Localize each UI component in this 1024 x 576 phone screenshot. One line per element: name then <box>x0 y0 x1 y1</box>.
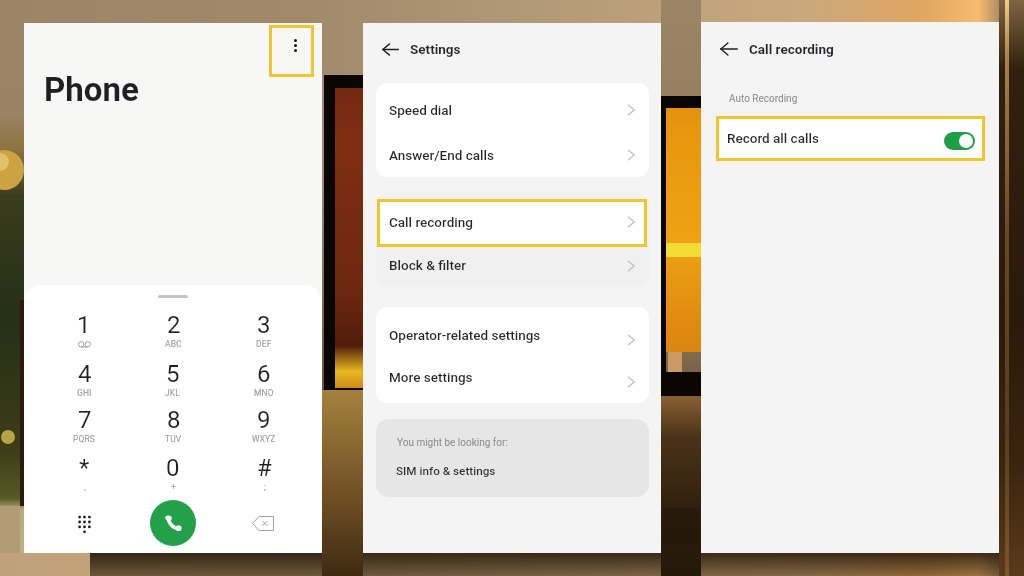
staticText: 1 <box>77 311 91 339</box>
staticText: Phone <box>44 70 139 109</box>
button[interactable] <box>376 307 650 355</box>
staticText: 6 <box>257 360 271 388</box>
staticText: TUV <box>165 434 182 444</box>
staticText: 2 <box>167 311 181 339</box>
staticText: 4 <box>78 360 92 388</box>
button[interactable]: More options <box>269 25 314 77</box>
button[interactable] <box>376 419 649 497</box>
staticText: Call recording <box>389 214 473 230</box>
staticText: , <box>84 482 86 492</box>
button[interactable] <box>716 116 985 161</box>
staticText: Speed dial <box>389 102 453 118</box>
button[interactable]: Show keypad <box>68 509 100 537</box>
staticText: 3 <box>257 311 271 339</box>
button[interactable]: Backspace <box>246 511 280 535</box>
button[interactable]: 4 <box>51 360 117 406</box>
staticText: Block & filter <box>389 257 466 273</box>
button[interactable] <box>376 355 650 403</box>
staticText: Auto Recording <box>729 93 798 105</box>
staticText: 8 <box>167 406 181 434</box>
staticText: 9 <box>257 406 271 434</box>
button[interactable]: Back <box>375 34 405 64</box>
button[interactable]: Call <box>150 500 196 546</box>
button[interactable] <box>376 83 650 130</box>
button[interactable] <box>376 240 650 287</box>
staticText: # <box>257 454 272 482</box>
staticText: PQRS <box>73 434 96 444</box>
staticText: Call recording <box>749 41 834 57</box>
button[interactable]: # <box>231 454 297 500</box>
button[interactable]: 6 <box>231 360 297 406</box>
staticText: WXYZ <box>252 434 276 444</box>
button[interactable] <box>377 199 647 247</box>
staticText: ; <box>264 482 266 492</box>
button[interactable]: 2 <box>140 311 206 357</box>
staticText: Operator-related settings <box>389 327 541 343</box>
button[interactable]: 3 <box>231 311 297 357</box>
staticText: MNO <box>254 388 274 398</box>
staticText: SIM info & settings <box>396 464 496 478</box>
staticText: * <box>79 454 90 482</box>
staticText: Answer/End calls <box>389 147 494 163</box>
staticText: Settings <box>410 41 461 57</box>
staticText: GHI <box>77 388 92 398</box>
staticText: Record all calls <box>727 130 819 146</box>
button[interactable]: 8 <box>140 406 206 452</box>
button[interactable]: Back <box>714 34 744 64</box>
staticText: You might be looking for: <box>397 437 508 449</box>
staticText: More settings <box>389 369 473 385</box>
button[interactable]: 9 <box>231 406 297 452</box>
staticText: + <box>171 482 176 492</box>
button[interactable]: 5 <box>140 360 206 406</box>
staticText: ABC <box>165 339 182 349</box>
staticText: JKL <box>165 388 181 398</box>
staticText: 7 <box>78 406 92 434</box>
button[interactable]: * <box>51 454 117 500</box>
button[interactable]: 1 <box>51 311 117 357</box>
staticText: DEF <box>256 339 272 349</box>
button[interactable] <box>376 130 650 177</box>
button[interactable]: 7 <box>51 406 117 452</box>
staticText: 0 <box>166 454 180 482</box>
staticText: 5 <box>166 360 180 388</box>
button[interactable]: 0 <box>140 454 206 500</box>
